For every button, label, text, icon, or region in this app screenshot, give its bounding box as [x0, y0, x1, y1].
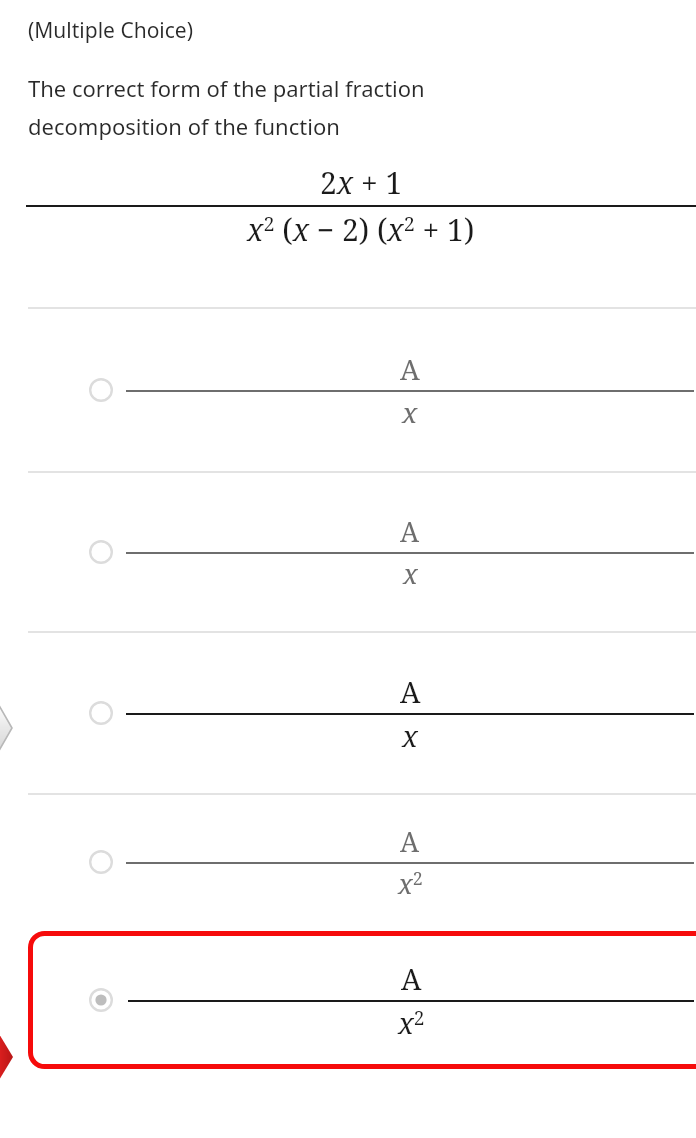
staticText: (Multiple Choice) [28, 16, 193, 45]
staticText: A [400, 513, 420, 550]
other: Correct answer marker [0, 1032, 13, 1082]
staticText: x2 (x − 2) (x2 + 1) [247, 209, 475, 250]
staticText: A [400, 672, 421, 711]
staticText: decomposition of the function [28, 111, 340, 141]
button[interactable]: A [0, 795, 696, 929]
other: Current item marker [0, 705, 12, 751]
staticText: x [402, 393, 418, 431]
button[interactable]: A [0, 633, 696, 793]
staticText: x2 [398, 1003, 425, 1042]
button[interactable]: A [28, 931, 696, 1069]
staticText: A [401, 959, 422, 998]
staticText: x2 [398, 865, 423, 902]
staticText: The correct form of the partial fraction [28, 73, 425, 103]
staticText: x [403, 555, 418, 592]
staticText: A [400, 823, 420, 860]
staticText: x [402, 716, 418, 755]
staticText: 2x + 1 [320, 162, 403, 203]
staticText: A [400, 350, 420, 388]
button[interactable]: A [0, 309, 696, 471]
button[interactable]: A [0, 473, 696, 631]
